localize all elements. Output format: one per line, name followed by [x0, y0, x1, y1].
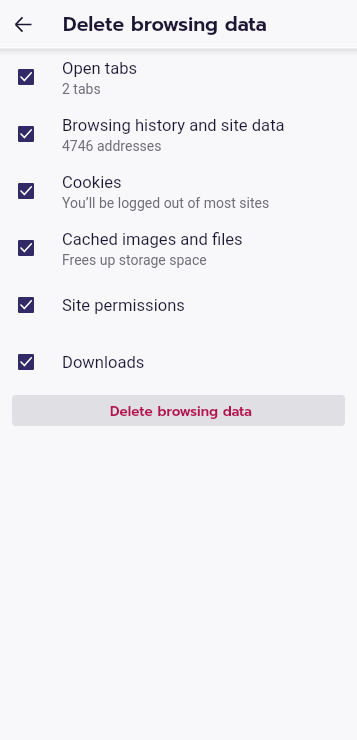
staticText: Site permissions — [62, 296, 185, 315]
staticText: Downloads — [62, 353, 145, 372]
staticText: Delete browsing data — [110, 401, 252, 421]
button[interactable]: Downloads — [0, 333, 357, 390]
staticText: Browsing history and site data — [62, 116, 285, 135]
button[interactable]: Site permissions — [0, 276, 357, 333]
button[interactable]: Cached images and files — [0, 219, 357, 276]
staticText: You’ll be logged out of most sites — [62, 195, 270, 211]
staticText: Cached images and files — [62, 230, 243, 249]
staticText: Frees up storage space — [62, 252, 207, 268]
staticText: Delete browsing data — [63, 10, 267, 39]
button[interactable]: Delete browsing data — [12, 395, 345, 426]
staticText: Open tabs — [62, 59, 138, 78]
staticText: 4746 addresses — [62, 138, 162, 154]
button[interactable]: Browsing history and site data — [0, 105, 357, 162]
staticText: Cookies — [62, 173, 122, 192]
button[interactable]: Cookies — [0, 162, 357, 219]
button[interactable]: Navigate up — [3, 4, 43, 44]
staticText: 2 tabs — [62, 81, 101, 97]
button[interactable]: Open tabs — [0, 48, 357, 105]
